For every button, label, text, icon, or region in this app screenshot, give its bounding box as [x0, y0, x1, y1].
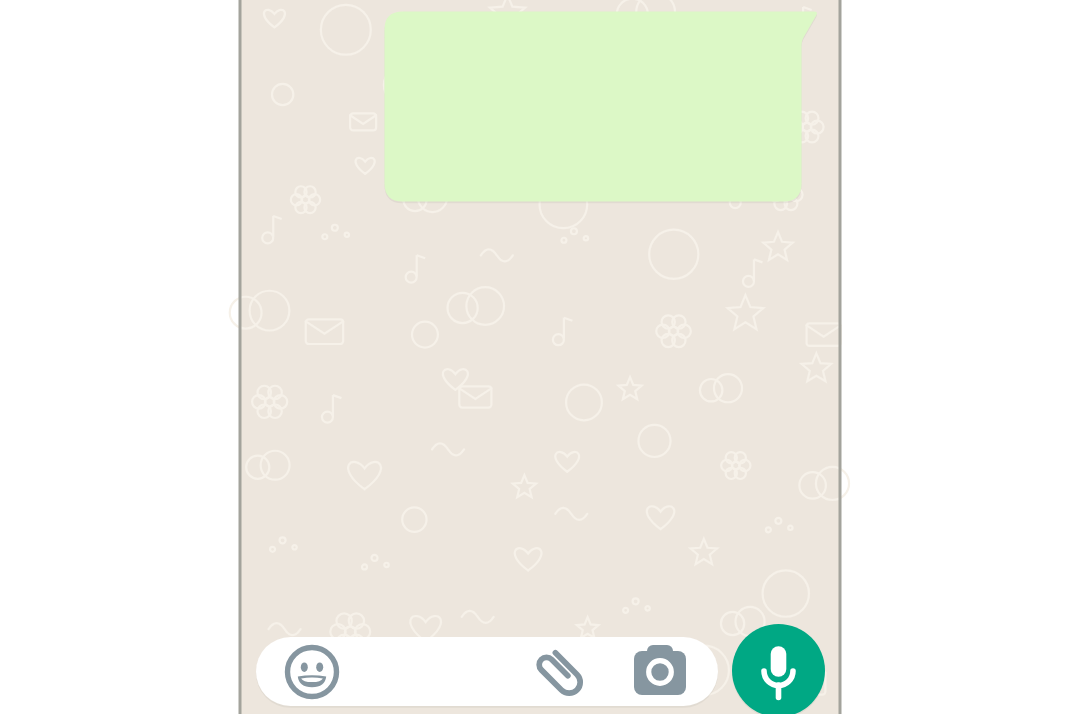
button[interactable] [284, 644, 340, 700]
button[interactable] [384, 12, 818, 202]
button[interactable] [256, 637, 718, 706]
button[interactable] [532, 645, 588, 701]
button[interactable] [732, 624, 825, 714]
button[interactable] [632, 643, 688, 699]
